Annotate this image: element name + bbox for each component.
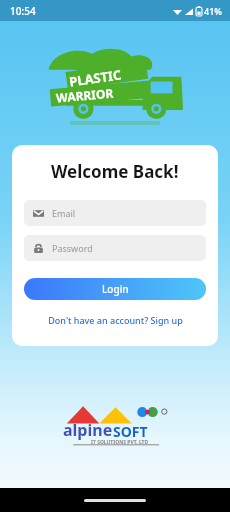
button[interactable]: Email	[24, 200, 206, 226]
staticText: IT SOLUTIONS PVT. LTD	[91, 439, 149, 446]
other: alpineSOFT IT Solutions logo	[57, 402, 173, 450]
staticText: PLASTIC	[68, 65, 123, 91]
button[interactable]: Login	[24, 278, 206, 300]
staticText: 41%	[204, 5, 222, 17]
staticText: Login	[102, 282, 129, 296]
staticText: Email	[52, 207, 76, 219]
staticText: Welcome Back!	[51, 160, 179, 183]
staticText: WARRIOR	[55, 84, 115, 105]
staticText: alpine	[63, 419, 113, 441]
staticText: 10:54	[10, 4, 36, 18]
staticText: SOFT	[113, 422, 148, 441]
button[interactable]: Password	[24, 235, 206, 261]
staticText: Password	[52, 242, 93, 254]
button[interactable]: Don't have an account? Sign up	[44, 312, 187, 328]
staticText: Don't have an account? Sign up	[48, 314, 183, 326]
